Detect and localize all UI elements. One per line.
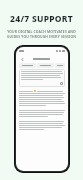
button[interactable]: Back — [19, 56, 25, 62]
button[interactable]: Copy message — [19, 69, 65, 87]
button[interactable]: Overview — [19, 63, 36, 68]
staticText: YOUR DIGITAL COACH MOTIVATES AND GUIDES … — [4, 29, 79, 39]
button[interactable]: Sessions — [37, 63, 54, 68]
button[interactable]: Chat — [55, 63, 65, 68]
staticText: 24/7 SUPPORT — [10, 13, 73, 25]
button[interactable]: Copy message — [60, 82, 63, 85]
